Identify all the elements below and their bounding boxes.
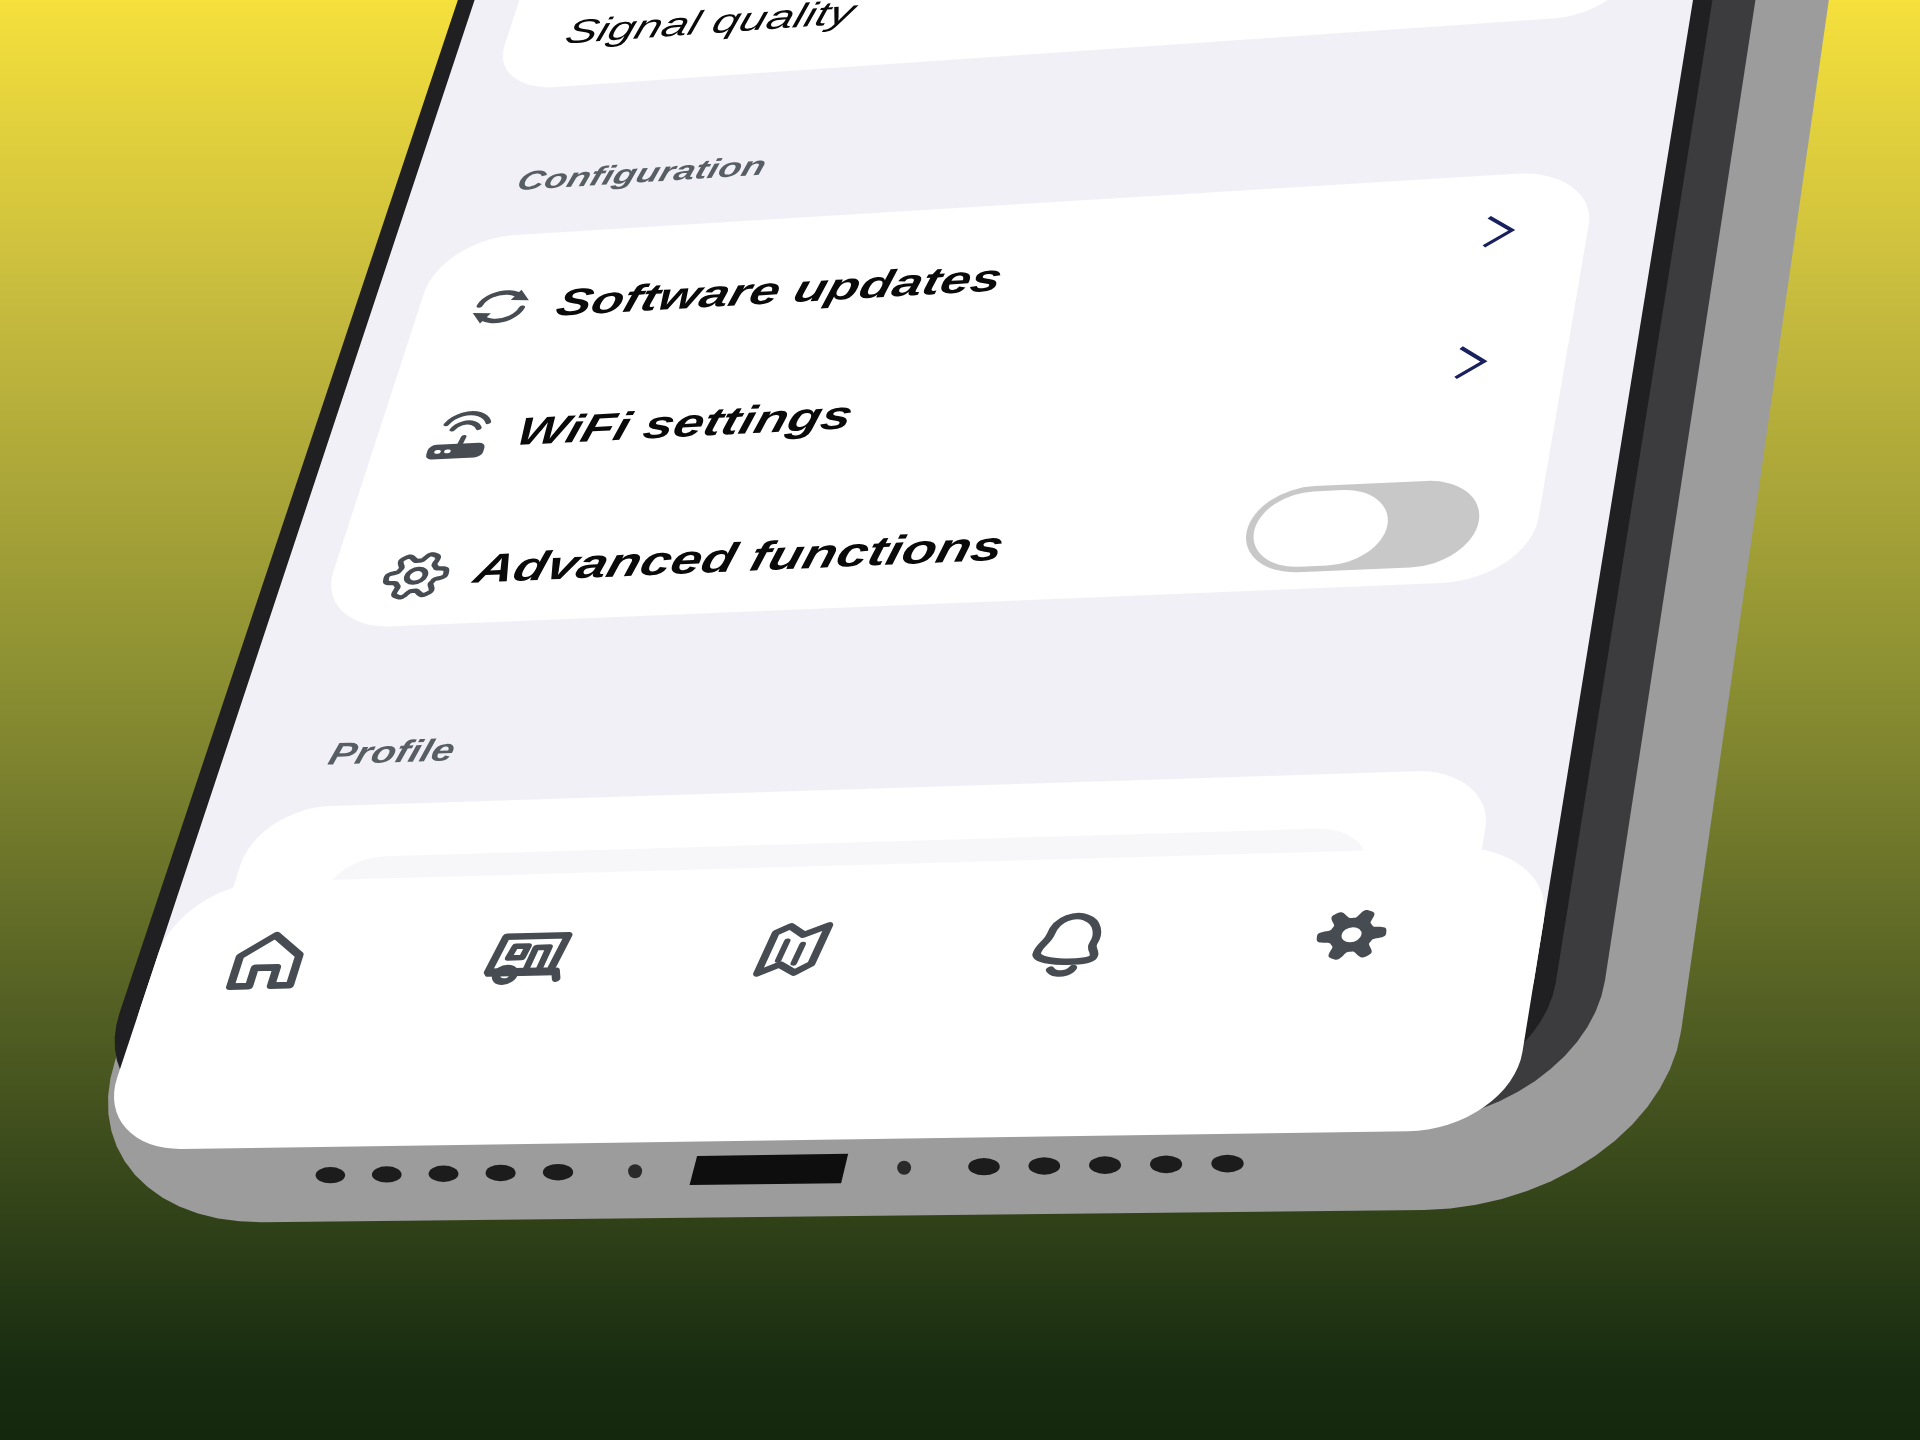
button[interactable]: Advanced functions — [222, 512, 1282, 637]
button[interactable]: Software updates — [300, 242, 1360, 362]
button[interactable]: Home — [212, 900, 342, 1030]
button[interactable]: WiFi settings — [258, 372, 1318, 492]
button[interactable]: Notifications — [1012, 882, 1142, 1012]
button[interactable]: Map — [735, 888, 865, 1018]
button[interactable]: Signal quality — [470, 0, 1520, 90]
button[interactable]: Settings — [1288, 878, 1418, 1008]
button[interactable]: Vehicle — [460, 898, 590, 1028]
